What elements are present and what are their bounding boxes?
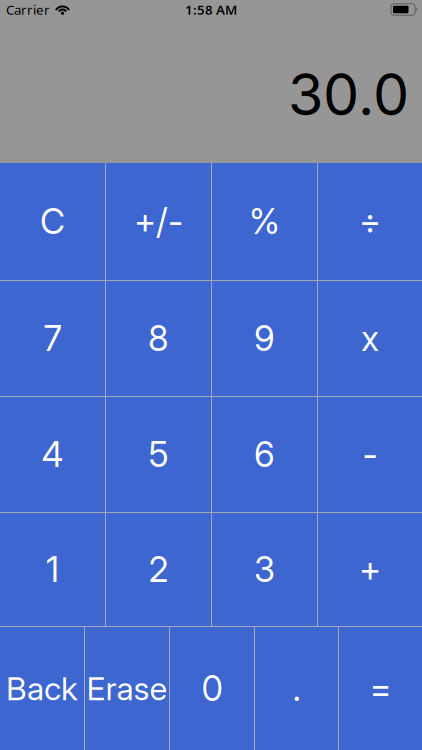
staticText: C [40,200,65,242]
button[interactable]: ÷ [318,163,422,280]
staticText: 3 [254,548,275,590]
button[interactable]: . [255,627,338,750]
staticText: 7 [43,317,61,359]
button[interactable]: = [339,627,422,750]
button[interactable]: 0 [170,627,254,750]
staticText: 1 [46,548,59,590]
button[interactable]: 1 [0,513,105,626]
button[interactable]: Back [0,627,84,750]
staticText: 0 [201,667,222,709]
button[interactable]: 5 [106,397,211,512]
button[interactable]: 6 [212,397,317,512]
staticText: . [292,667,300,709]
staticText: 2 [148,548,168,590]
staticText: ÷ [359,200,381,242]
staticText: +/- [134,200,183,242]
staticText: 9 [254,317,275,359]
staticText: 8 [148,317,169,359]
button[interactable]: - [318,397,422,512]
staticText: - [362,433,377,475]
button[interactable]: x [318,281,422,396]
button[interactable]: + [318,513,422,626]
button[interactable]: 3 [212,513,317,626]
staticText: 30.0 [288,60,409,129]
button[interactable]: % [212,163,317,280]
staticText: + [359,548,381,590]
staticText: Carrier [6,1,50,18]
staticText: 4 [41,433,63,475]
staticText: Back [6,669,78,708]
button[interactable]: 9 [212,281,317,396]
button[interactable]: 2 [106,513,211,626]
staticText: Erase [86,669,167,708]
staticText: 1:58 AM [185,1,237,18]
button[interactable]: +/- [106,163,211,280]
button[interactable]: Erase [85,627,169,750]
button[interactable]: 8 [106,281,211,396]
staticText: 5 [148,433,168,475]
staticText: 6 [254,433,275,475]
button[interactable]: C [0,163,105,280]
staticText: = [369,667,391,709]
button[interactable]: 7 [0,281,105,396]
button[interactable]: 4 [0,397,105,512]
staticText: x [361,317,379,359]
staticText: % [249,200,280,242]
